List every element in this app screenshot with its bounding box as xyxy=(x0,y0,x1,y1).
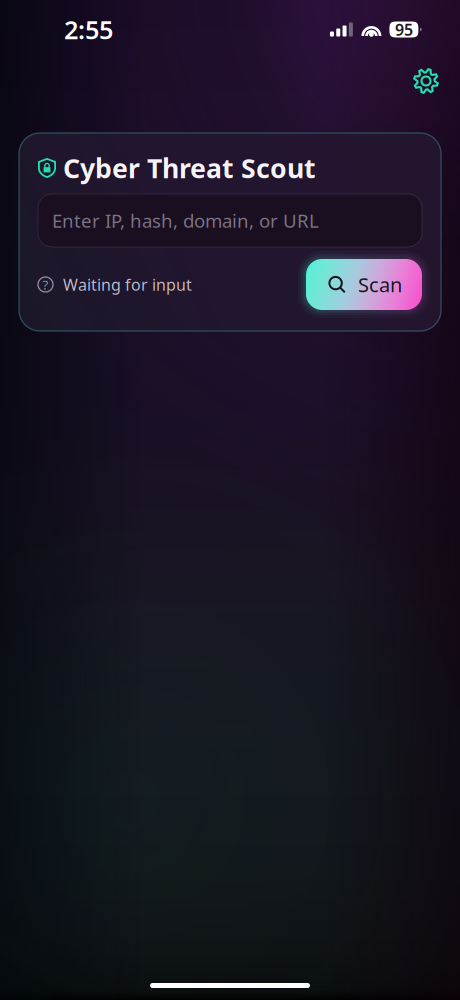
staticText: Scan xyxy=(358,271,402,298)
button[interactable]: Settings xyxy=(405,60,447,102)
button[interactable]: Enter IP, hash, domain, or URL xyxy=(38,194,422,247)
staticText: Waiting for input xyxy=(63,274,192,295)
staticText: 2:55 xyxy=(64,13,113,46)
staticText: Cyber Threat Scout xyxy=(63,150,316,186)
staticText: ? xyxy=(42,276,48,293)
staticText: Enter IP, hash, domain, or URL xyxy=(52,208,319,233)
button[interactable]: Scan xyxy=(306,259,422,310)
staticText: 95 xyxy=(395,19,413,40)
